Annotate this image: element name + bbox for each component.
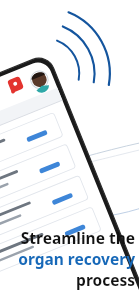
staticText: Streamline the bbox=[20, 227, 135, 248]
button[interactable]: Streamline the bbox=[18, 227, 135, 290]
staticText: organ recovery bbox=[18, 248, 135, 269]
staticText: process bbox=[76, 269, 135, 290]
